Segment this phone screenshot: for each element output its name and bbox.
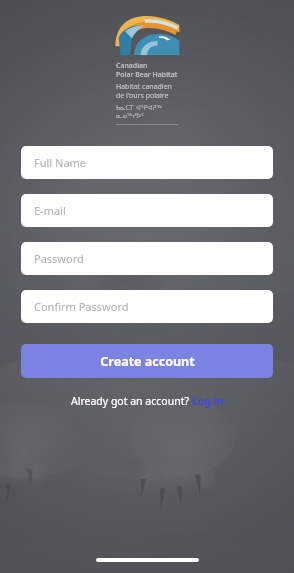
button[interactable]: Log in [192,394,224,408]
staticText: Full Name [34,155,87,170]
staticText: ᑲᓇᑕᒥ ᐊᕿᐊᕈᖅ ᓇᓄᖅᓯᐅᑦ [116,103,162,120]
staticText: Already got an account? [71,394,192,408]
other: Canadian Polar Bear Habitat logo [114,12,180,56]
button[interactable]: Password [21,242,273,275]
staticText: Log in [192,394,224,408]
staticText: Create account [100,353,195,370]
button[interactable]: E-mail [21,194,273,227]
staticText: Confirm Password [34,299,129,314]
staticText: Canadian Polar Bear Habitat [116,61,178,79]
button[interactable]: Full Name [21,146,273,179]
button[interactable]: Confirm Password [21,290,273,323]
staticText: E-mail [34,203,66,218]
staticText: Password [34,251,84,266]
button[interactable]: Create account [21,344,273,378]
staticText: Habitat canadien de l'ours polaire [116,82,172,100]
